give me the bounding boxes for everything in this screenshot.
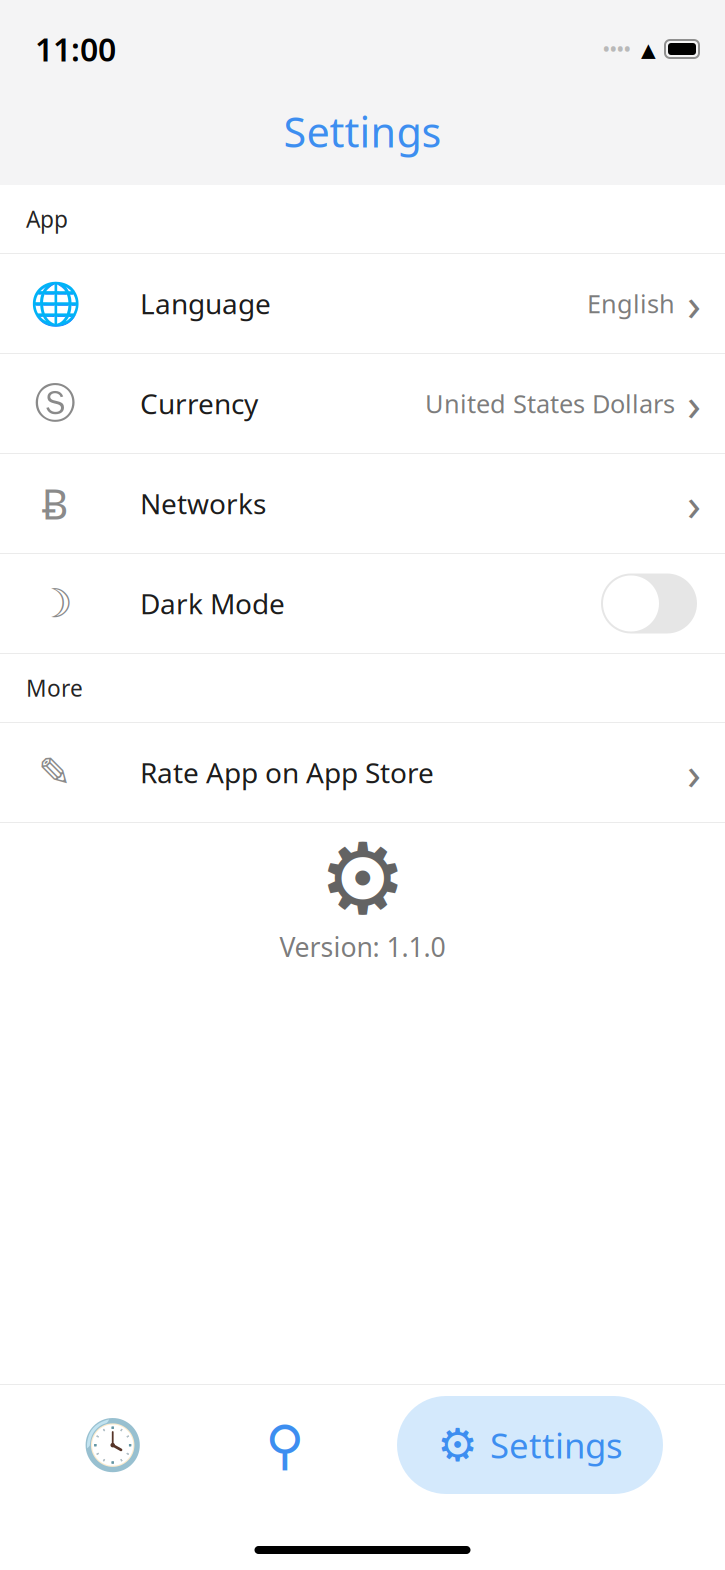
staticText: Version: 1.1.0 xyxy=(279,929,445,964)
staticText: 🌐 xyxy=(29,280,80,327)
staticText: ✎ xyxy=(38,750,72,795)
staticText: Dark Mode xyxy=(140,585,285,622)
staticText: More xyxy=(26,673,83,703)
staticText: ☽ xyxy=(37,581,73,626)
staticText: Rate App on App Store xyxy=(140,754,434,791)
staticText: •••• xyxy=(603,37,631,60)
button[interactable]: 🌐 xyxy=(0,254,725,354)
staticText: › xyxy=(687,273,701,334)
button[interactable]: Ƀ xyxy=(0,454,725,554)
staticText: ⚙ xyxy=(437,1419,478,1471)
button[interactable]: ✎ xyxy=(0,723,725,823)
staticText: Ⓢ xyxy=(34,378,75,429)
staticText: › xyxy=(687,373,701,434)
button[interactable]: Search xyxy=(225,1406,345,1484)
staticText: App xyxy=(26,204,68,234)
staticText: ▴ xyxy=(641,32,656,66)
button[interactable]: ⚙ xyxy=(397,1396,663,1494)
staticText: ⚲ xyxy=(265,1415,304,1475)
staticText: 11:00 xyxy=(35,28,116,70)
button[interactable]: History xyxy=(52,1406,172,1484)
staticText: Ƀ xyxy=(41,476,68,531)
button[interactable]: Ⓢ xyxy=(0,354,725,454)
button[interactable]: ☽ xyxy=(0,554,725,654)
staticText: Networks xyxy=(140,485,266,522)
staticText: Settings xyxy=(283,104,441,159)
staticText: 🕓 xyxy=(82,1417,143,1473)
staticText: Language xyxy=(140,285,271,322)
staticText: Settings xyxy=(490,1422,623,1468)
staticText: ⚙ xyxy=(318,823,406,935)
staticText: Currency xyxy=(140,385,258,422)
staticText: › xyxy=(687,473,701,534)
staticText: United States Dollars xyxy=(425,387,675,420)
staticText: › xyxy=(687,742,701,803)
staticText: English xyxy=(587,287,675,320)
